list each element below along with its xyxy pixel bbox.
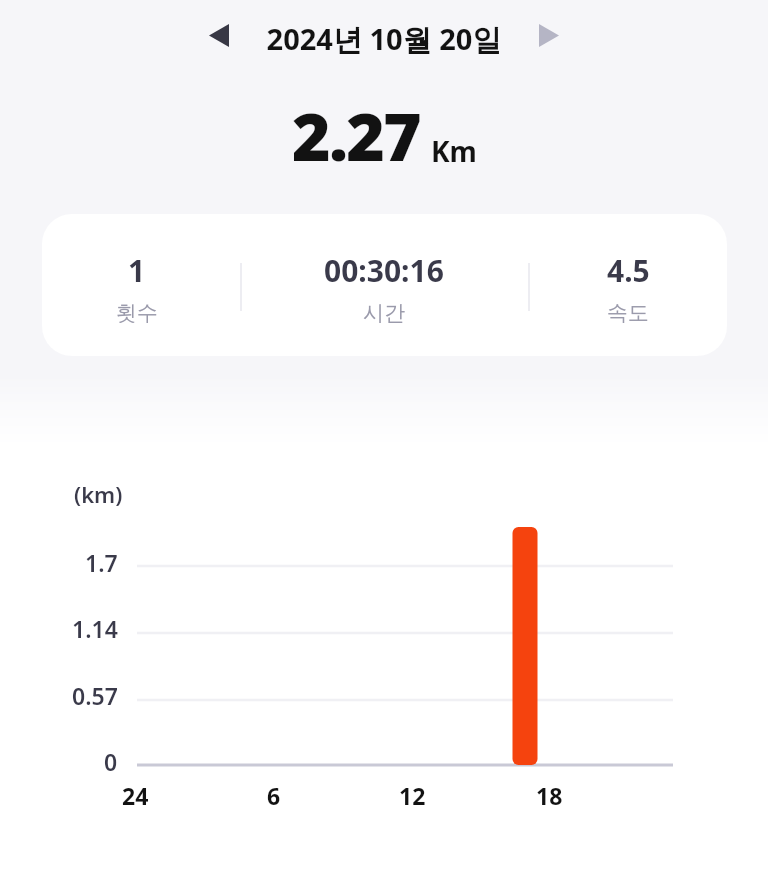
- staticText: 속도: [607, 300, 649, 326]
- staticText: 시간: [363, 300, 405, 326]
- staticText: 1.7: [85, 547, 118, 578]
- button[interactable]: 4.5: [538, 250, 718, 326]
- staticText: (km): [74, 479, 123, 509]
- staticText: 1.14: [72, 613, 118, 644]
- staticText: 0.57: [72, 680, 118, 711]
- button[interactable]: Previous day: [196, 12, 242, 58]
- staticText: 24: [122, 780, 149, 811]
- staticText: 6: [267, 780, 281, 811]
- button[interactable]: 1: [47, 250, 227, 326]
- staticText: 2.27: [292, 90, 420, 180]
- staticText: 18: [536, 780, 563, 811]
- staticText: 4.5: [607, 250, 650, 291]
- staticText: 00:30:16: [324, 250, 444, 291]
- staticText: 2024년 10월 20일: [0, 19, 768, 59]
- button[interactable]: Next day: [526, 12, 572, 58]
- staticText: 12: [399, 780, 426, 811]
- staticText: 0: [104, 746, 118, 777]
- staticText: 횟수: [116, 300, 158, 326]
- staticText: 1: [128, 250, 146, 291]
- button[interactable]: 00:30:16: [294, 250, 474, 326]
- staticText: Km: [431, 132, 477, 170]
